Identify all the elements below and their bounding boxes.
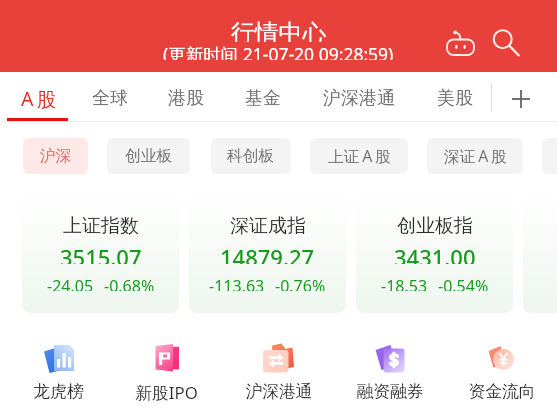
button[interactable]: 新股IPO (111, 338, 222, 408)
button[interactable]: 沪深 (23, 138, 88, 174)
button[interactable]: 深证 A 股 (427, 138, 523, 174)
button[interactable]: 智能助手 (442, 21, 479, 58)
staticText: 深证成指 (230, 214, 306, 236)
staticText: 创业板 (125, 146, 173, 166)
staticText: (更新时间 21-07-20 09:28:59) (163, 42, 394, 60)
button[interactable]: 龙虎榜 (3, 338, 114, 408)
button[interactable]: 添加自选 (499, 76, 543, 121)
staticText: 科创板 (227, 146, 275, 166)
button[interactable]: 沪深港通 (313, 76, 405, 121)
button[interactable]: A 股 (0, 76, 85, 121)
button[interactable]: 港股 (156, 76, 216, 121)
staticText: 行情中心 (231, 18, 327, 42)
staticText: 上证 A 股 (328, 145, 391, 167)
button[interactable]: 深证成指 (189, 191, 346, 313)
button[interactable]: 基金 (233, 76, 293, 121)
button[interactable] (523, 191, 557, 313)
staticText: -0.68% (104, 275, 155, 291)
button[interactable]: 创业板 (107, 138, 190, 174)
staticText: -0.76% (275, 275, 326, 291)
staticText: 创业板指 (397, 214, 473, 236)
staticText: 沪深港通 (245, 381, 313, 402)
button[interactable]: 沪深港通 (223, 338, 334, 408)
staticText: 沪深 (40, 146, 72, 166)
button[interactable]: 科创板 (211, 138, 291, 174)
staticText: 融资融券 (356, 381, 424, 402)
staticText: 龙虎榜 (33, 381, 84, 402)
staticText: 基金 (245, 87, 281, 110)
staticText: 港股 (168, 87, 204, 110)
button[interactable]: 创业板指 (356, 191, 513, 313)
staticText: 资金流向 (468, 381, 536, 402)
staticText: 沪深港通 (323, 87, 395, 110)
staticText: -24.05 (47, 275, 94, 291)
staticText: 14879.27 (220, 242, 315, 264)
button[interactable]: 搜索 (485, 21, 521, 57)
button[interactable]: 全球 (80, 76, 140, 121)
button[interactable]: 美股 (425, 76, 485, 121)
staticText: 全球 (92, 87, 128, 110)
staticText: 上证指数 (63, 214, 139, 236)
staticText: A 股 (21, 85, 57, 112)
button[interactable]: 融资融券 (334, 338, 445, 408)
staticText: 3431.00 (394, 242, 476, 264)
staticText: -113.63 (209, 275, 265, 291)
staticText: 深证 A 股 (444, 145, 507, 167)
button[interactable]: 资金流向 (446, 338, 557, 408)
button[interactable]: 上证 A 股 (310, 138, 408, 174)
staticText: -0.54% (438, 275, 489, 291)
staticText: 3515.07 (60, 242, 142, 264)
staticText: -18.53 (381, 275, 428, 291)
button[interactable]: 上证指数 (22, 191, 179, 313)
staticText: 美股 (437, 87, 473, 110)
staticText: 新股IPO (135, 381, 198, 404)
